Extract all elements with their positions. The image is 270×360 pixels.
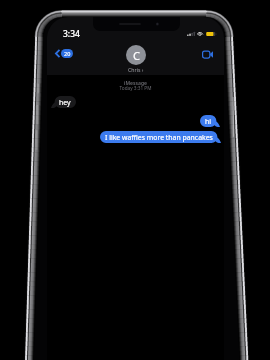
staticText: hi xyxy=(205,117,212,126)
button[interactable]: I like waffles more than pancakes xyxy=(100,131,221,143)
staticText: iMessage xyxy=(47,80,224,87)
staticText: 20 xyxy=(64,50,71,57)
button[interactable]: FaceTime video call xyxy=(199,48,216,61)
staticText: 3:34 xyxy=(63,28,80,40)
staticText: hey xyxy=(59,98,71,107)
staticText: C xyxy=(133,48,140,63)
button[interactable]: Back xyxy=(52,47,76,60)
button[interactable]: C xyxy=(47,45,224,73)
button[interactable]: hey xyxy=(51,96,76,108)
staticText: I like waffles more than pancakes xyxy=(105,133,213,142)
button[interactable]: hi xyxy=(200,115,220,127)
staticText: Today 3:31 PM xyxy=(47,85,224,91)
staticText: Chris › xyxy=(128,66,144,73)
